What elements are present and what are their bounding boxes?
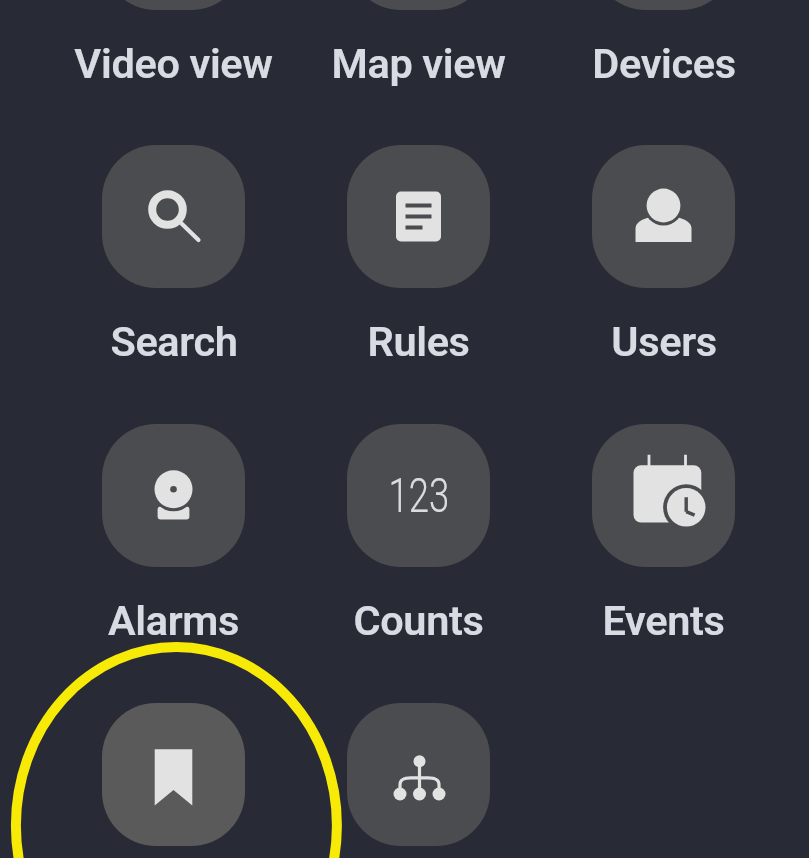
button[interactable]: Users (552, 145, 775, 346)
staticText: Video view (74, 39, 273, 88)
staticText: Alarms (108, 596, 239, 645)
button[interactable]: Devices (552, 0, 775, 68)
staticText: Counts (353, 596, 484, 645)
button[interactable]: Alarms (62, 424, 285, 625)
button[interactable]: Video view (62, 0, 285, 68)
button[interactable]: Events (552, 424, 775, 625)
staticText: Search (110, 317, 238, 366)
staticText: Events (602, 596, 725, 645)
staticText: Devices (592, 39, 736, 88)
button[interactable]: Map view (307, 0, 530, 68)
button[interactable]: Rules (307, 145, 530, 346)
staticText: 123 (389, 467, 449, 523)
staticText: Rules (367, 317, 470, 366)
button[interactable]: Bookmarks (62, 703, 285, 846)
staticText: Users (611, 317, 717, 366)
button[interactable]: Search (62, 145, 285, 346)
staticText: Map view (331, 39, 506, 88)
button[interactable]: Counts (307, 424, 530, 625)
button[interactable]: Hierarchy (307, 703, 530, 846)
